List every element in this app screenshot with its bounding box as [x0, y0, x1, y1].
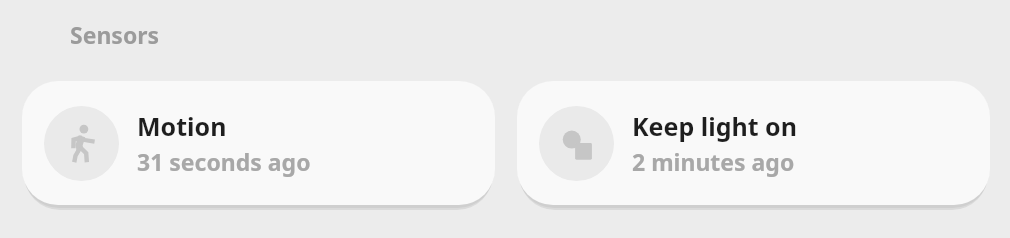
staticText: 31 seconds ago: [137, 146, 311, 177]
staticText: Keep light on: [632, 109, 797, 143]
staticText: Motion: [137, 109, 227, 143]
staticText: Sensors: [70, 19, 160, 50]
staticText: 2 minutes ago: [632, 146, 795, 177]
button[interactable]: Motion: [22, 81, 495, 205]
button[interactable]: Keep light on: [517, 81, 990, 205]
